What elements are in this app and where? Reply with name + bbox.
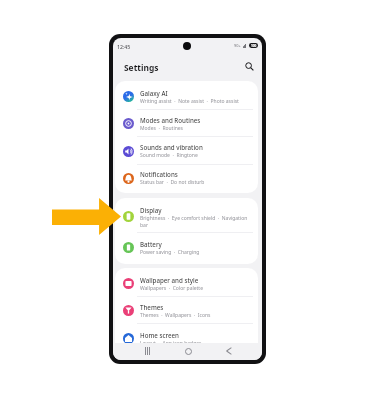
staticText: Battery bbox=[140, 240, 162, 248]
staticText: Brightness · Eye comfort shield · Naviga… bbox=[140, 215, 248, 228]
staticText: 100 bbox=[251, 44, 257, 48]
staticText: Modes and Routines bbox=[140, 116, 201, 124]
button[interactable]: Notifications bbox=[115, 165, 258, 191]
button[interactable]: Wallpaper and style bbox=[115, 270, 258, 297]
staticText: Display bbox=[140, 206, 162, 214]
staticText: Galaxy AI bbox=[140, 89, 168, 97]
staticText: Themes · Wallpapers · Icons bbox=[140, 312, 211, 319]
staticText: Writing assist · Note assist · Photo ass… bbox=[140, 98, 239, 105]
button[interactable]: Galaxy AI bbox=[115, 83, 258, 110]
staticText: Wallpaper and style bbox=[140, 276, 199, 284]
staticText: Sound mode · Ringtone bbox=[140, 152, 198, 159]
staticText: Notifications bbox=[140, 170, 178, 178]
staticText: Modes · Routines bbox=[140, 125, 184, 132]
staticText: Wallpapers · Color palette bbox=[140, 285, 203, 292]
staticText: 90+ bbox=[234, 43, 241, 48]
staticText: Settings bbox=[124, 62, 159, 73]
staticText: 12:45 bbox=[117, 43, 131, 50]
staticText: Power saving · Charging bbox=[140, 249, 200, 256]
staticText: Home screen bbox=[140, 331, 179, 339]
button[interactable]: Sounds and vibration bbox=[115, 137, 258, 165]
button[interactable]: Display bbox=[115, 200, 258, 233]
button[interactable]: Back bbox=[222, 344, 236, 358]
button[interactable]: Recent apps bbox=[140, 344, 154, 358]
button[interactable]: Themes bbox=[115, 297, 258, 324]
staticText: Status bar · Do not disturb bbox=[140, 179, 205, 186]
button[interactable]: Home bbox=[181, 344, 195, 358]
staticText: Layout · App icon badges bbox=[140, 340, 202, 347]
staticText: Sounds and vibration bbox=[140, 143, 203, 151]
staticText: Themes bbox=[140, 303, 164, 311]
button[interactable]: Home screen bbox=[115, 324, 258, 353]
button[interactable]: Battery bbox=[115, 233, 258, 262]
button[interactable]: Modes and Routines bbox=[115, 110, 258, 137]
button[interactable]: Search bbox=[242, 59, 257, 74]
